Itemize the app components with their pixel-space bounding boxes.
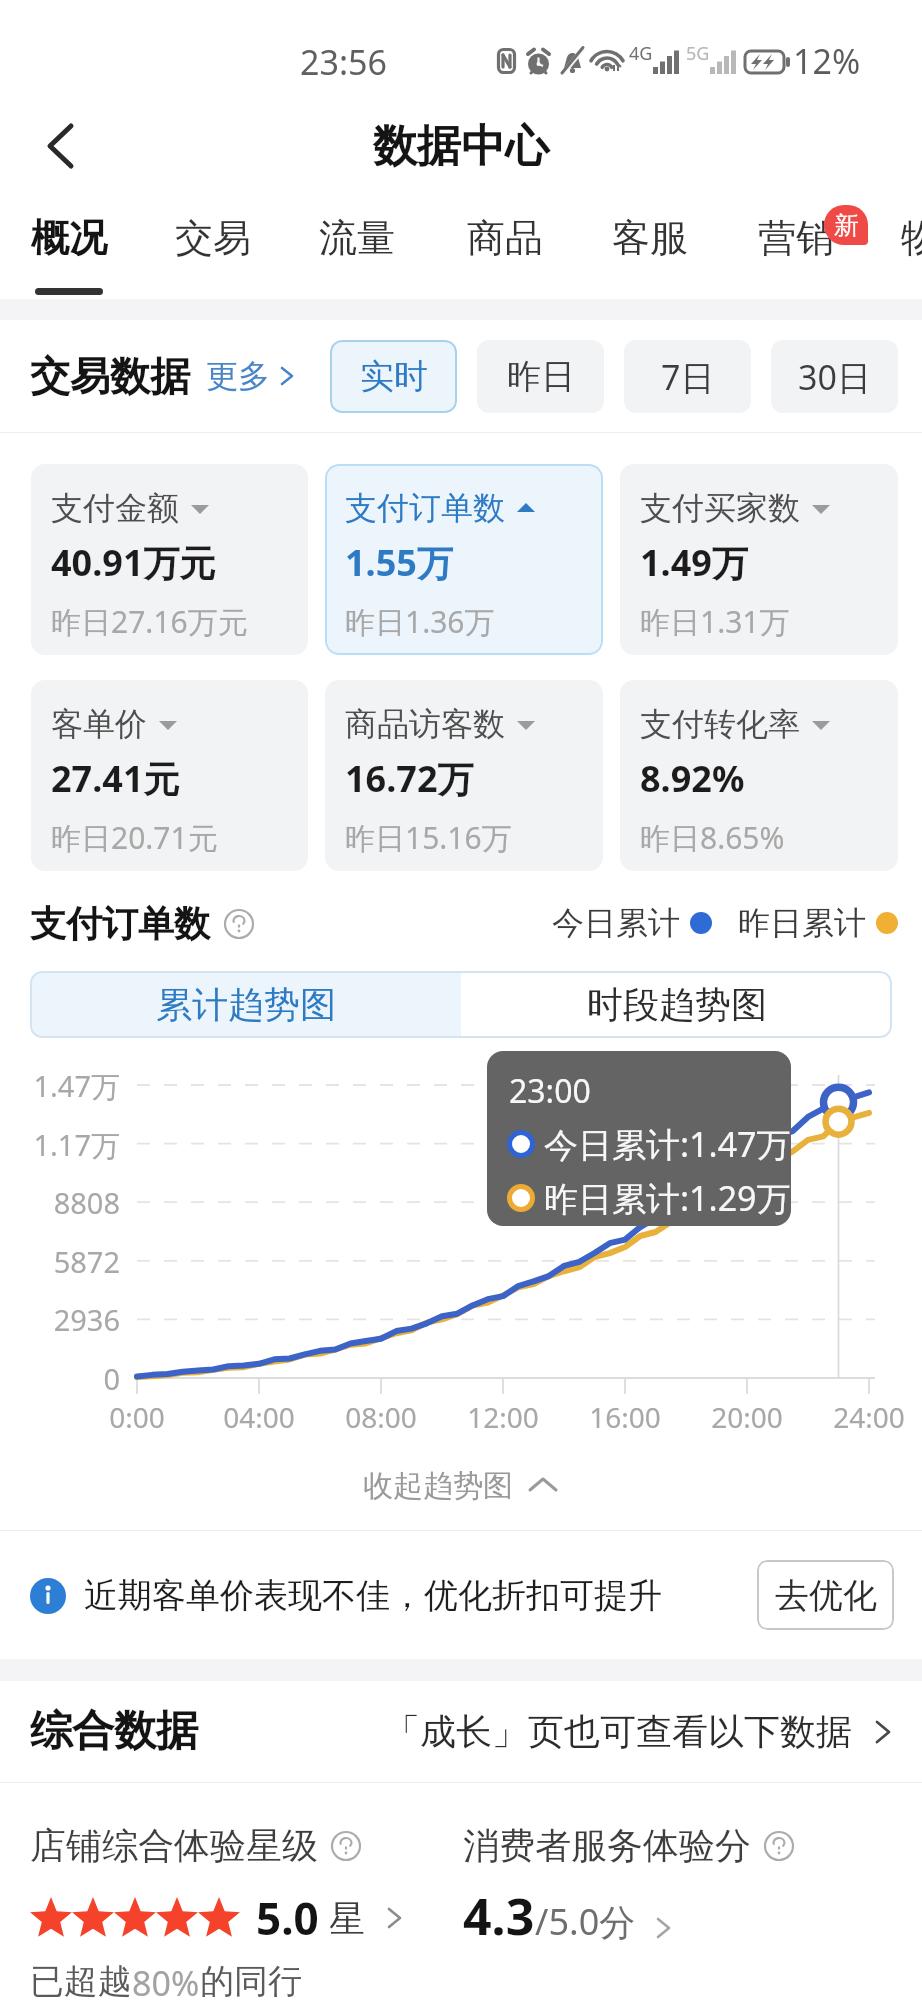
button[interactable]: 5.0 <box>30 1888 409 1948</box>
button[interactable]: 收起趋势图 <box>0 1442 922 1530</box>
staticText: 物 <box>901 214 922 262</box>
button[interactable]: 实时 <box>330 340 457 413</box>
staticText: 5872 <box>0 1242 120 1281</box>
button[interactable]: 客单价 <box>31 680 308 871</box>
staticText: 今日累计:1.47万 <box>544 1121 791 1167</box>
staticText: 数据中心 <box>373 119 549 174</box>
button[interactable]: Help <box>763 1830 795 1862</box>
staticText: 流量 <box>319 214 395 262</box>
staticText: 综合数据 <box>30 1705 198 1758</box>
button[interactable]: 物 <box>898 196 922 299</box>
staticText: 1.47万 <box>0 1066 120 1106</box>
button[interactable]: 支付金额 <box>31 464 308 655</box>
button[interactable]: 支付转化率 <box>620 680 898 871</box>
button[interactable]: 时段趋势图 <box>461 971 892 1038</box>
staticText: 昨日累计 <box>738 903 866 943</box>
staticText: 4.3 <box>463 1882 535 1950</box>
staticText: 交易数据 <box>30 351 190 401</box>
staticText: 12:00 <box>443 1398 563 1436</box>
staticText: 30日 <box>798 354 871 400</box>
staticText: 12% <box>793 38 861 84</box>
staticText: 消费者服务体验分 <box>463 1823 751 1868</box>
button[interactable]: Back <box>26 110 98 182</box>
staticText: 商品 <box>467 214 543 262</box>
staticText: 交易 <box>175 214 251 262</box>
button[interactable]: 流量 <box>315 196 399 299</box>
staticText: 23:56 <box>300 39 387 85</box>
staticText: 40.91万元 <box>51 538 216 587</box>
staticText: 24:00 <box>809 1398 922 1436</box>
staticText: 16.72万 <box>345 754 474 803</box>
button[interactable]: 客服 <box>608 196 692 299</box>
staticText: 更多 <box>206 356 270 396</box>
staticText: 昨日 <box>507 355 575 398</box>
staticText: 20:00 <box>687 1398 807 1436</box>
staticText: 0:00 <box>77 1398 197 1436</box>
button[interactable]: 累计趋势图 <box>30 971 461 1038</box>
staticText: 营销 <box>758 214 834 262</box>
staticText: 星 <box>329 1896 365 1941</box>
button[interactable]: Help <box>223 908 255 940</box>
button[interactable]: 昨日 <box>477 340 604 413</box>
staticText: 商品访客数 <box>345 704 505 744</box>
staticText: 昨日27.16万元 <box>51 601 248 642</box>
staticText: 「成长」页也可查看以下数据 <box>384 1709 852 1754</box>
button[interactable]: Help <box>330 1830 362 1862</box>
staticText: 0 <box>0 1359 120 1398</box>
button[interactable]: 去优化 <box>757 1560 894 1630</box>
staticText: 支付买家数 <box>640 488 800 528</box>
button[interactable]: 30日 <box>771 340 898 413</box>
staticText: 昨日1.31万 <box>640 601 790 642</box>
staticText: 今日累计 <box>552 903 680 943</box>
staticText: 80% <box>132 1960 200 2000</box>
button[interactable]: 7日 <box>624 340 751 413</box>
staticText: 08:00 <box>321 1398 441 1436</box>
staticText: 昨日1.36万 <box>345 601 495 642</box>
button[interactable]: 商品 <box>463 196 547 299</box>
staticText: 支付订单数 <box>30 901 210 946</box>
staticText: 店铺综合体验星级 <box>30 1823 318 1868</box>
staticText: 概况 <box>31 214 107 262</box>
staticText: 去优化 <box>775 1574 877 1617</box>
button[interactable]: 4.3 <box>463 1882 678 1950</box>
staticText: 1.17万 <box>0 1125 120 1165</box>
button[interactable]: 营销 <box>754 196 838 299</box>
staticText: 1.49万 <box>640 538 748 587</box>
staticText: 4G <box>629 41 653 66</box>
staticText: 昨日累计:1.29万 <box>544 1175 791 1221</box>
staticText: 昨日15.16万 <box>345 817 512 858</box>
staticText: 客单价 <box>51 704 147 744</box>
staticText: 2936 <box>0 1300 120 1339</box>
button[interactable]: 交易 <box>171 196 255 299</box>
staticText: 支付订单数 <box>345 488 505 528</box>
staticText: 27.41元 <box>51 754 180 803</box>
staticText: 04:00 <box>199 1398 319 1436</box>
button[interactable]: 更多 <box>206 356 300 396</box>
staticText: 累计趋势图 <box>156 982 336 1027</box>
staticText: 新 <box>834 210 859 241</box>
staticText: 昨日8.65% <box>640 817 785 858</box>
staticText: /5.0分 <box>535 1897 636 1946</box>
staticText: 已超越 <box>30 1960 132 2000</box>
staticText: 16:00 <box>565 1398 685 1436</box>
staticText: 5.0 <box>256 1888 319 1948</box>
button[interactable]: 支付买家数 <box>620 464 898 655</box>
staticText: 支付转化率 <box>640 704 800 744</box>
staticText: 客服 <box>612 214 688 262</box>
staticText: 的同行 <box>200 1960 302 2000</box>
staticText: 时段趋势图 <box>587 982 767 1027</box>
staticText: 支付金额 <box>51 488 179 528</box>
staticText: 1.55万 <box>345 538 453 587</box>
button[interactable]: 商品访客数 <box>325 680 603 871</box>
staticText: 8.92% <box>640 754 745 803</box>
button[interactable]: 支付订单数 <box>325 464 603 655</box>
button[interactable]: 概况 <box>27 196 111 299</box>
staticText: 收起趋势图 <box>363 1467 513 1505</box>
staticText: 8808 <box>0 1183 120 1222</box>
staticText: 近期客单价表现不佳，优化折扣可提升 <box>84 1574 662 1617</box>
staticText: 实时 <box>360 355 428 398</box>
staticText: 5G <box>686 41 710 66</box>
button[interactable]: 「成长」页也可查看以下数据 <box>384 1709 898 1754</box>
staticText: 7日 <box>661 354 715 400</box>
staticText: 昨日20.71元 <box>51 817 218 858</box>
